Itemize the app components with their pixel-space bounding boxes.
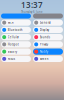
button[interactable]: Privacy bbox=[33, 41, 63, 47]
button[interactable]: Notify bbox=[33, 48, 63, 55]
staticText: Screen bbox=[40, 57, 49, 61]
staticText: 13:37 bbox=[21, 0, 43, 10]
button[interactable]: Cellular bbox=[1, 34, 31, 40]
button[interactable]: Battery bbox=[1, 48, 31, 55]
button[interactable]: Screen bbox=[33, 56, 63, 62]
staticText: Thursday 6 June bbox=[21, 10, 43, 14]
button[interactable]: Bluetooth bbox=[1, 27, 31, 33]
staticText: Cellular bbox=[8, 35, 19, 39]
staticText: Wi-Fi bbox=[8, 21, 14, 24]
staticText: Privacy bbox=[40, 43, 48, 46]
staticText: Display bbox=[40, 28, 49, 32]
staticText: General bbox=[40, 21, 51, 24]
button[interactable]: Sounds bbox=[33, 34, 63, 40]
staticText: Hotspot bbox=[8, 43, 19, 46]
button[interactable]: General bbox=[33, 19, 63, 26]
staticText: Bluetooth bbox=[8, 28, 23, 32]
staticText: Notify bbox=[40, 50, 48, 53]
button[interactable]: Wi-Fi bbox=[1, 19, 31, 26]
staticText: Sounds bbox=[40, 35, 50, 39]
staticText: Battery bbox=[8, 50, 17, 53]
button[interactable]: Hotspot bbox=[1, 41, 31, 47]
button[interactable]: Display bbox=[33, 27, 63, 33]
staticText: Focus bbox=[8, 57, 15, 61]
button[interactable]: Focus bbox=[1, 56, 31, 62]
